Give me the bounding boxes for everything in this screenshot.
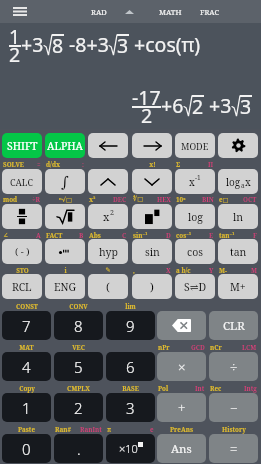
button[interactable]: Ans (157, 434, 206, 463)
staticText: cos⁻¹ (176, 231, 192, 240)
staticText: ∜□ (133, 195, 144, 202)
button[interactable]: sin (132, 239, 172, 264)
button[interactable]: ln (218, 204, 258, 229)
button[interactable]: Multiply (157, 352, 206, 381)
staticText: FRAC (200, 7, 220, 17)
staticText: x (103, 209, 110, 224)
staticText: × (178, 358, 186, 376)
staticText: = (230, 440, 238, 458)
staticText: ( (106, 279, 110, 294)
staticText: E (209, 231, 214, 240)
button[interactable]: 7 (2, 311, 51, 340)
button[interactable]: log (218, 169, 258, 194)
staticText: Ran# (55, 425, 72, 434)
staticText: ÷R (32, 195, 41, 204)
button[interactable]: M+ (218, 274, 258, 299)
button[interactable]: . (54, 434, 103, 463)
button[interactable]: 3 (106, 393, 155, 422)
button[interactable]: ALPHA (45, 133, 85, 158)
staticText: 6 (126, 357, 135, 377)
staticText: ∠ (3, 231, 9, 238)
button[interactable]: Settings (218, 133, 258, 158)
button[interactable]: Right (132, 133, 172, 158)
button[interactable]: ENG (45, 274, 85, 299)
button[interactable]: Left (88, 133, 128, 158)
button[interactable]: 5 (54, 352, 103, 381)
staticText: Π (208, 160, 214, 169)
button[interactable]: Integral (45, 169, 85, 194)
staticText: FACT (46, 231, 63, 240)
staticText: MAT (19, 343, 34, 352)
button[interactable]: Divide (209, 352, 258, 381)
staticText: a (241, 181, 245, 190)
staticText: x (189, 175, 195, 189)
button[interactable]: Degrees minutes seconds (45, 239, 85, 264)
button[interactable]: log (175, 204, 215, 229)
staticText: -8+3 (64, 31, 109, 58)
button[interactable]: RCL (2, 274, 42, 299)
button[interactable]: Times ten to the power (106, 434, 155, 463)
button[interactable]: Menu (9, 0, 31, 23)
staticText: π (107, 425, 112, 434)
button[interactable]: x (175, 169, 215, 194)
staticText: CONV (69, 302, 88, 311)
button[interactable]: Equals (209, 434, 258, 463)
button[interactable]: Fraction (2, 204, 42, 229)
staticText: F (253, 231, 257, 240)
button[interactable]: S⇌D (175, 274, 215, 299)
staticText: HEX (157, 195, 171, 204)
staticText: BIN (202, 195, 214, 204)
staticText: ⁿ√□ (59, 195, 72, 204)
staticText: Abs (89, 231, 101, 240)
button[interactable]: Power (132, 204, 172, 229)
staticText: sin⁻¹ (133, 231, 148, 240)
button[interactable]: x (88, 204, 128, 229)
button[interactable]: 4 (2, 352, 51, 381)
button[interactable]: cos (175, 239, 215, 264)
button[interactable]: CALC (2, 169, 42, 194)
button[interactable]: Plus (157, 393, 206, 422)
button[interactable]: Close bracket (132, 274, 172, 299)
staticText: S⇌D (184, 280, 207, 294)
button[interactable]: Expand display (119, 2, 139, 21)
staticText: -17 (132, 84, 161, 111)
staticText: STO (16, 266, 29, 275)
button[interactable]: 6 (106, 352, 155, 381)
staticText: Paste (18, 425, 35, 434)
staticText: CALC (10, 176, 34, 188)
button[interactable]: Minus (209, 393, 258, 422)
button[interactable]: Up (88, 169, 128, 194)
staticText: 2 (141, 102, 153, 129)
staticText: 1 (9, 23, 21, 50)
button[interactable]: Down (132, 169, 172, 194)
button[interactable]: 9 (106, 311, 155, 340)
button[interactable]: 0 (2, 434, 51, 463)
button[interactable]: Negative (2, 239, 42, 264)
button[interactable]: hyp (88, 239, 128, 264)
button[interactable]: FRAC (195, 2, 224, 21)
staticText: LCM (242, 343, 257, 352)
staticText: +3 (204, 92, 232, 119)
staticText: RanInt (80, 425, 102, 434)
staticText: History (222, 425, 246, 434)
staticText: +6 (161, 92, 184, 119)
button[interactable]: 8 (54, 311, 103, 340)
button[interactable]: CLR (209, 311, 258, 340)
staticText: M- (219, 266, 227, 275)
button[interactable]: SHIFT (2, 133, 42, 158)
button[interactable]: 2 (54, 393, 103, 422)
button[interactable]: RAD (86, 2, 112, 21)
staticText: A (36, 231, 41, 240)
button[interactable]: MODE (175, 133, 215, 158)
staticText: 4 (22, 357, 31, 377)
button[interactable]: MATH (155, 2, 185, 21)
staticText: lim (125, 302, 136, 311)
button[interactable]: Open bracket (88, 274, 128, 299)
staticText: a b/c (176, 266, 191, 275)
staticText: 2 (9, 41, 21, 68)
button[interactable]: 1 (2, 393, 51, 422)
button[interactable]: Square root (45, 204, 85, 229)
button[interactable]: Backspace (157, 311, 206, 340)
button[interactable]: tan (218, 239, 258, 264)
staticText: Y (209, 266, 214, 275)
